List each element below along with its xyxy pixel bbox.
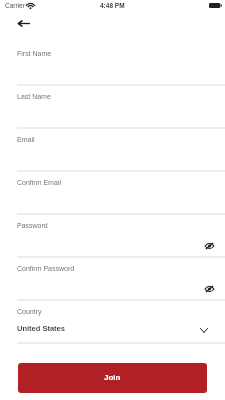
staticText: United States [17,324,65,332]
staticText: Last Name [17,93,51,101]
staticText: Password [17,222,48,230]
button[interactable]: Show password [201,281,217,297]
staticText: 4:48 PM [100,2,125,9]
button[interactable]: Last Name [0,85,225,128]
button[interactable]: First Name [0,42,225,85]
button[interactable]: Select country [196,322,212,338]
button[interactable]: Join [18,363,207,393]
staticText: Join [104,373,121,382]
button[interactable]: Show password [201,238,217,254]
staticText: Carrier [5,2,25,9]
staticText: Confirm Email [17,179,61,187]
button[interactable]: Confirm Email [0,171,225,214]
staticText: Confirm Password [17,265,75,273]
staticText: First Name [17,50,52,58]
button[interactable]: Country [0,300,225,343]
button[interactable]: Confirm Password [0,257,225,300]
staticText: Email [17,136,35,144]
button[interactable]: Email [0,128,225,171]
staticText: Country [17,308,42,316]
button[interactable]: Password [0,214,225,257]
button[interactable]: Back [15,14,33,32]
